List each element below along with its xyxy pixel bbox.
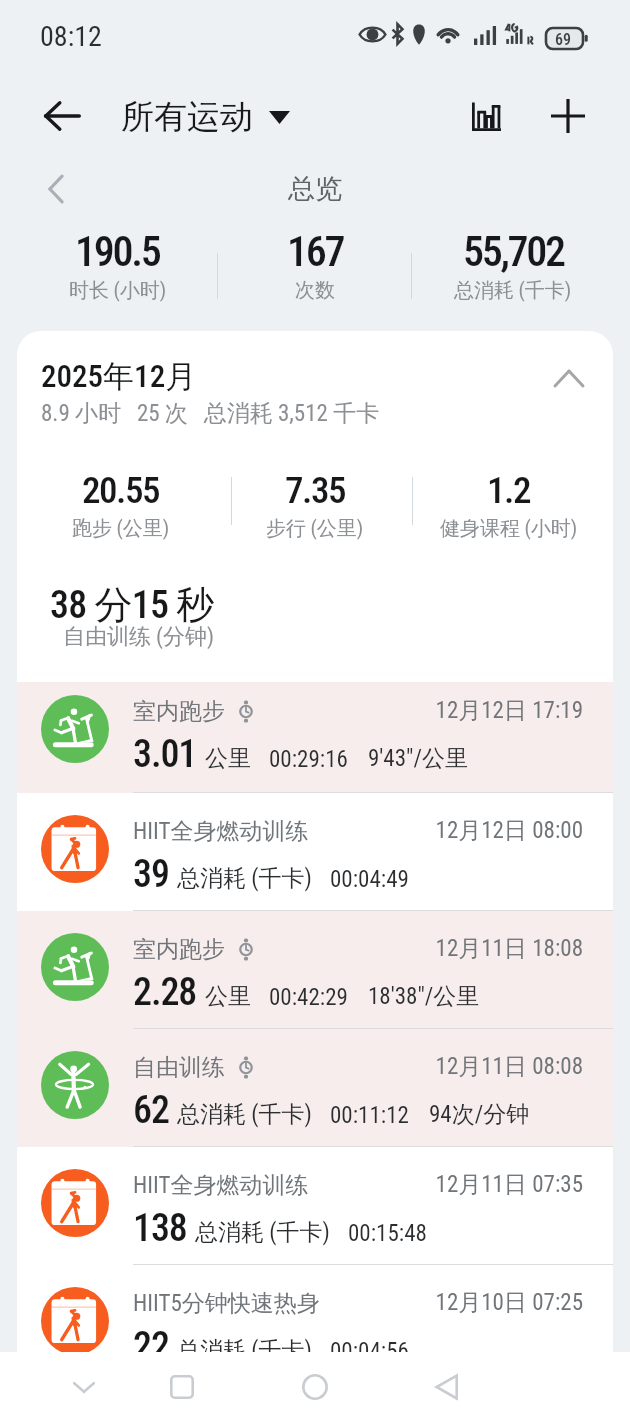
staticText: 步行 (公里)	[266, 516, 364, 541]
staticText: 08:12	[40, 20, 102, 53]
staticText: 12月11日 07:35	[435, 1170, 583, 1199]
staticText: 7.35	[285, 469, 346, 512]
staticText: 18'38"/公里	[368, 982, 480, 1011]
other: Collapse	[555, 371, 583, 386]
staticText: 总消耗 (千卡)	[454, 278, 572, 303]
button[interactable]: Home	[283, 1355, 347, 1419]
staticText: 1.2	[487, 469, 531, 512]
staticText: 12月11日 18:08	[435, 934, 583, 963]
staticText: 20.55	[82, 469, 160, 512]
button[interactable]: Add	[540, 88, 596, 144]
staticText: 2025年12月	[41, 357, 197, 396]
staticText: 62	[133, 1088, 169, 1133]
staticText: 健身课程 (小时)	[440, 516, 578, 541]
staticText: 94次/分钟	[429, 1100, 530, 1129]
button[interactable]: 室内跑步	[17, 911, 613, 1029]
staticText: 12月12日 08:00	[435, 816, 583, 845]
staticText: 时长 (小时)	[69, 278, 167, 303]
staticText: 00:29:16	[269, 746, 348, 773]
staticText: 190.5	[75, 227, 160, 276]
button[interactable]: Back	[414, 1355, 478, 1419]
staticText: 室内跑步	[133, 935, 225, 964]
staticText: 次数	[295, 278, 335, 303]
staticText: 9'43"/公里	[368, 744, 468, 773]
staticText: 00:04:56	[330, 1338, 409, 1365]
staticText: 00:15:48	[348, 1220, 427, 1247]
button[interactable]: 室内跑步	[17, 682, 613, 793]
staticText: 00:04:49	[330, 866, 409, 893]
staticText: 自由训练 (分钟)	[63, 623, 214, 651]
staticText: 跑步 (公里)	[72, 516, 170, 541]
staticText: 00:11:12	[330, 1102, 409, 1129]
staticText: 公里	[205, 982, 251, 1011]
staticText: 138	[133, 1206, 187, 1251]
staticText: 总消耗 (千卡)	[177, 864, 312, 893]
staticText: 00:42:29	[269, 984, 348, 1011]
staticText: 所有运动	[121, 96, 253, 138]
staticText: 总览	[288, 172, 342, 206]
staticText: HIIT全身燃动训练	[133, 1171, 309, 1200]
staticText: 39	[133, 852, 169, 897]
staticText: HIIT5分钟快速热身	[133, 1289, 320, 1318]
staticText: 22	[133, 1324, 169, 1369]
button[interactable]: Previous	[30, 163, 82, 215]
staticText: HIIT全身燃动训练	[133, 817, 309, 846]
staticText: 室内跑步	[133, 697, 225, 726]
button[interactable]: Recents	[150, 1355, 214, 1419]
staticText: 自由训练	[133, 1053, 225, 1082]
staticText: 38 分15 秒	[50, 581, 214, 629]
staticText: 3.01	[133, 732, 197, 777]
button[interactable]: 所有运动	[121, 96, 290, 138]
button[interactable]: 2025年12月	[17, 331, 613, 682]
staticText: 公里	[205, 744, 251, 773]
staticText: 总消耗 (千卡)	[177, 1336, 312, 1365]
staticText: 12月10日 07:25	[435, 1288, 583, 1317]
staticText: 2.28	[133, 970, 197, 1015]
button[interactable]: Back	[34, 88, 90, 144]
staticText: 总消耗 (千卡)	[195, 1218, 330, 1247]
staticText: 12月12日 17:19	[435, 696, 583, 725]
button[interactable]: HIIT全身燃动训练	[17, 1147, 613, 1265]
staticText: 55,702	[463, 227, 564, 276]
button[interactable]: HIIT全身燃动训练	[17, 793, 613, 911]
button[interactable]: Hide keyboard	[52, 1355, 116, 1419]
staticText: 69	[555, 30, 572, 49]
button[interactable]: HIIT5分钟快速热身	[17, 1265, 613, 1383]
staticText: 167	[287, 227, 344, 276]
staticText: 8.9 小时 25 次 总消耗 3,512 千卡	[41, 399, 380, 428]
staticText: 12月11日 08:08	[435, 1052, 583, 1081]
button[interactable]: 自由训练	[17, 1029, 613, 1147]
button[interactable]: Statistics	[458, 88, 514, 144]
staticText: 总消耗 (千卡)	[177, 1100, 312, 1129]
